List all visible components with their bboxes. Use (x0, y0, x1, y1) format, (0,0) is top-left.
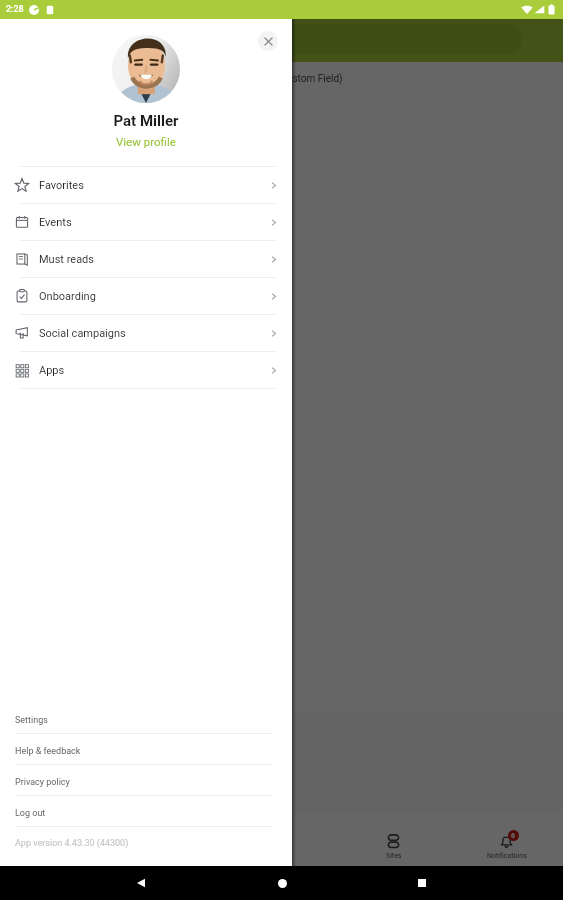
button[interactable] (0, 828, 112, 866)
button[interactable]: Home (271, 872, 293, 894)
button[interactable]: Help & feedback (0, 733, 292, 764)
button[interactable]: Must reads (0, 241, 292, 278)
staticText: Settings (15, 715, 48, 726)
button[interactable]: 6 (450, 828, 563, 866)
staticText: Events (39, 216, 72, 229)
staticText: Social campaigns (39, 327, 126, 340)
button[interactable]: Social campaigns (0, 315, 292, 352)
button[interactable] (112, 828, 224, 866)
staticText: View profile (116, 135, 176, 148)
staticText: Privacy policy (15, 777, 70, 788)
button[interactable]: Recents (411, 872, 433, 894)
staticText: Apps (39, 364, 65, 377)
button[interactable]: View profile (108, 134, 184, 149)
button[interactable]: Favorites (0, 167, 292, 204)
staticText: Onboarding (39, 290, 96, 303)
staticText: Log out (15, 808, 46, 819)
staticText: 6 (511, 832, 516, 840)
staticText: Must reads (39, 253, 94, 266)
button[interactable]: Log out (0, 795, 292, 826)
button[interactable]: Close (258, 31, 278, 51)
staticText: Pat Miller (0, 112, 292, 130)
staticText: App version 4.43.30 (44300) (15, 838, 129, 849)
staticText: 2:28 (6, 4, 24, 15)
staticText: Favorites (39, 179, 84, 192)
staticText: Sites (386, 852, 402, 860)
staticText: Notifications (487, 852, 527, 860)
button[interactable]: Onboarding (0, 278, 292, 315)
button[interactable]: Back (130, 872, 152, 894)
button[interactable]: Privacy policy (0, 764, 292, 795)
button[interactable]: Settings (0, 703, 292, 733)
staticText: Help & feedback (15, 746, 81, 757)
button[interactable]: Apps (0, 352, 292, 389)
staticText: Update to Site (Custom Field) (212, 73, 343, 85)
button[interactable]: Events (0, 204, 292, 241)
button[interactable]: Sites (337, 828, 450, 866)
button[interactable] (224, 828, 337, 866)
